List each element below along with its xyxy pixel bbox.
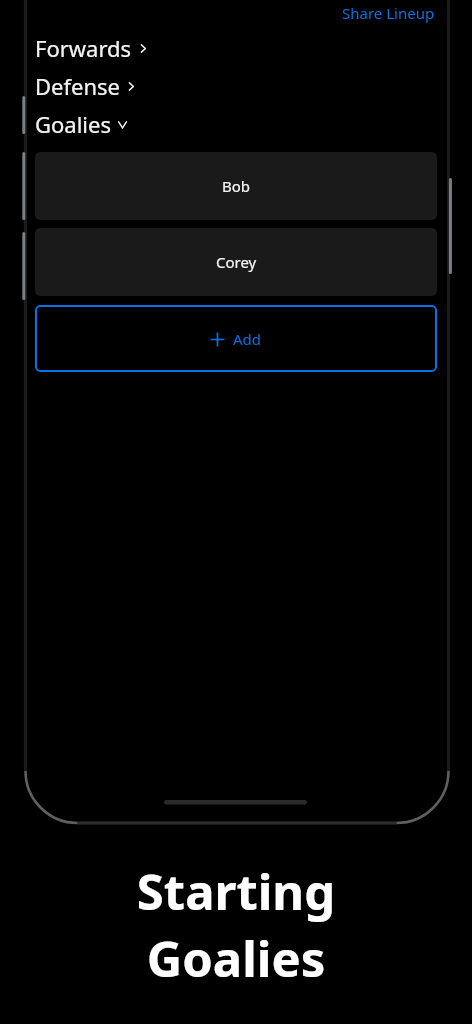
button[interactable]: Share Lineup [340,2,437,24]
staticText: Goalies [0,925,472,992]
button[interactable]: Forwards [35,29,437,67]
staticText: Add [233,329,262,349]
button[interactable]: Add [35,305,437,372]
staticText: Corey [216,252,257,272]
button[interactable]: Goalies [35,105,437,143]
staticText: Forwards [35,33,132,63]
staticText: Defense [35,71,120,101]
staticText: Share Lineup [342,3,435,23]
staticText: Bob [222,176,251,196]
staticText: Starting [0,858,472,925]
button[interactable]: Bob [35,152,437,220]
button[interactable]: Corey [35,228,437,296]
button[interactable]: Defense [35,67,437,105]
staticText: Goalies [35,109,111,139]
